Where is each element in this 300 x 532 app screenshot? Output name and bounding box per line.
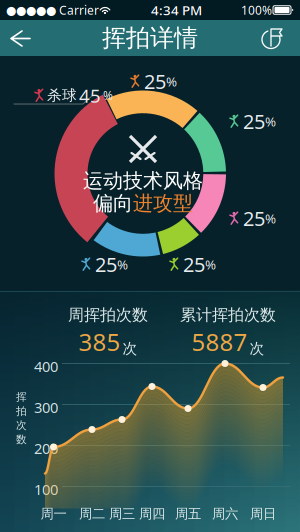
staticText: 杀球 [47, 86, 77, 104]
staticText: ●●●●● Carrier [6, 2, 99, 18]
staticText: 5887 [191, 326, 247, 358]
staticText: 进攻型 [133, 191, 193, 216]
staticText: % [166, 72, 177, 90]
staticText: % [265, 209, 276, 227]
staticText: 300 [34, 397, 58, 417]
staticText: 挥拍详情 [102, 23, 198, 53]
staticText: 周日 [250, 505, 276, 522]
staticText: 周六 [212, 505, 238, 522]
button[interactable]: Share [255, 20, 295, 56]
staticText: 4:34 PM [151, 1, 202, 19]
staticText: % [103, 87, 113, 103]
staticText: 数 [16, 433, 27, 446]
button[interactable]: Back [0, 20, 44, 56]
staticText: 25 [243, 108, 265, 135]
staticText: 45 [79, 83, 101, 108]
staticText: 周四 [139, 505, 165, 522]
staticText: 次 [249, 339, 264, 357]
staticText: 周二 [79, 505, 105, 522]
staticText: % [117, 255, 128, 273]
staticText: 25 [183, 251, 205, 278]
staticText: 25 [95, 251, 117, 278]
staticText: 运动技术风格 [83, 168, 203, 193]
staticText: % [265, 112, 276, 130]
staticText: 周一 [40, 505, 66, 522]
staticText: 100 [34, 479, 58, 499]
staticText: 周挥拍次数 [68, 305, 148, 325]
staticText: 25 [144, 68, 166, 95]
staticText: 385 [78, 326, 120, 358]
staticText: 累计挥拍次数 [180, 305, 276, 325]
staticText: 次 [16, 419, 27, 432]
staticText: 周五 [175, 505, 201, 522]
staticText: 25 [243, 205, 265, 232]
staticText: 拍 [16, 405, 27, 418]
staticText: % [205, 255, 216, 273]
staticText: 挥 [16, 390, 27, 404]
staticText: 100% [241, 2, 272, 18]
staticText: 次 [122, 339, 137, 357]
staticText: 400 [34, 356, 58, 376]
staticText: 200 [34, 438, 58, 458]
staticText: 周三 [109, 505, 135, 522]
staticText: 偏向 [93, 191, 133, 216]
